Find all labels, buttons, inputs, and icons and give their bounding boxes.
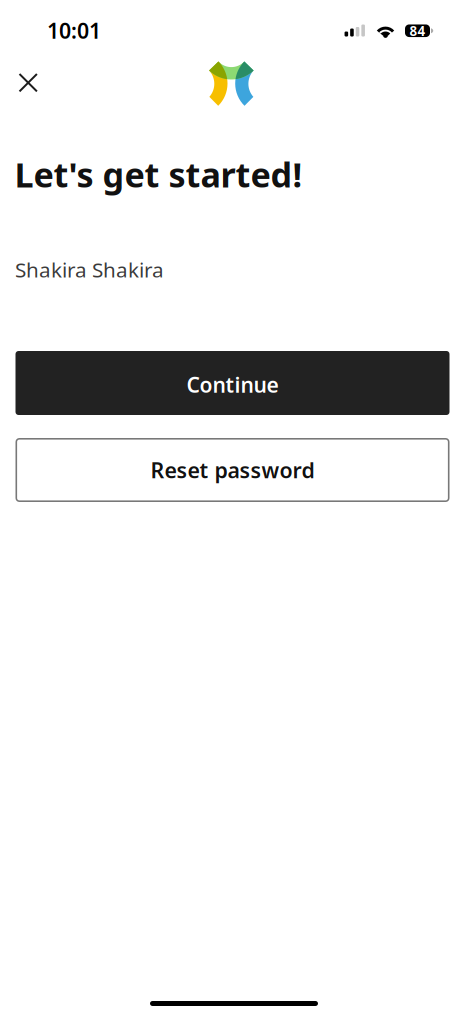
staticText: 84: [409, 22, 425, 40]
button[interactable]: Continue: [15, 351, 449, 415]
button[interactable]: Close: [0, 0, 56, 108]
button[interactable]: Reset password: [15, 438, 449, 502]
staticText: Let's get started!: [14, 151, 302, 197]
staticText: Shakira Shakira: [15, 255, 164, 284]
staticText: 10:01: [47, 16, 101, 45]
staticText: Continue: [186, 370, 278, 399]
staticText: Reset password: [150, 455, 314, 485]
